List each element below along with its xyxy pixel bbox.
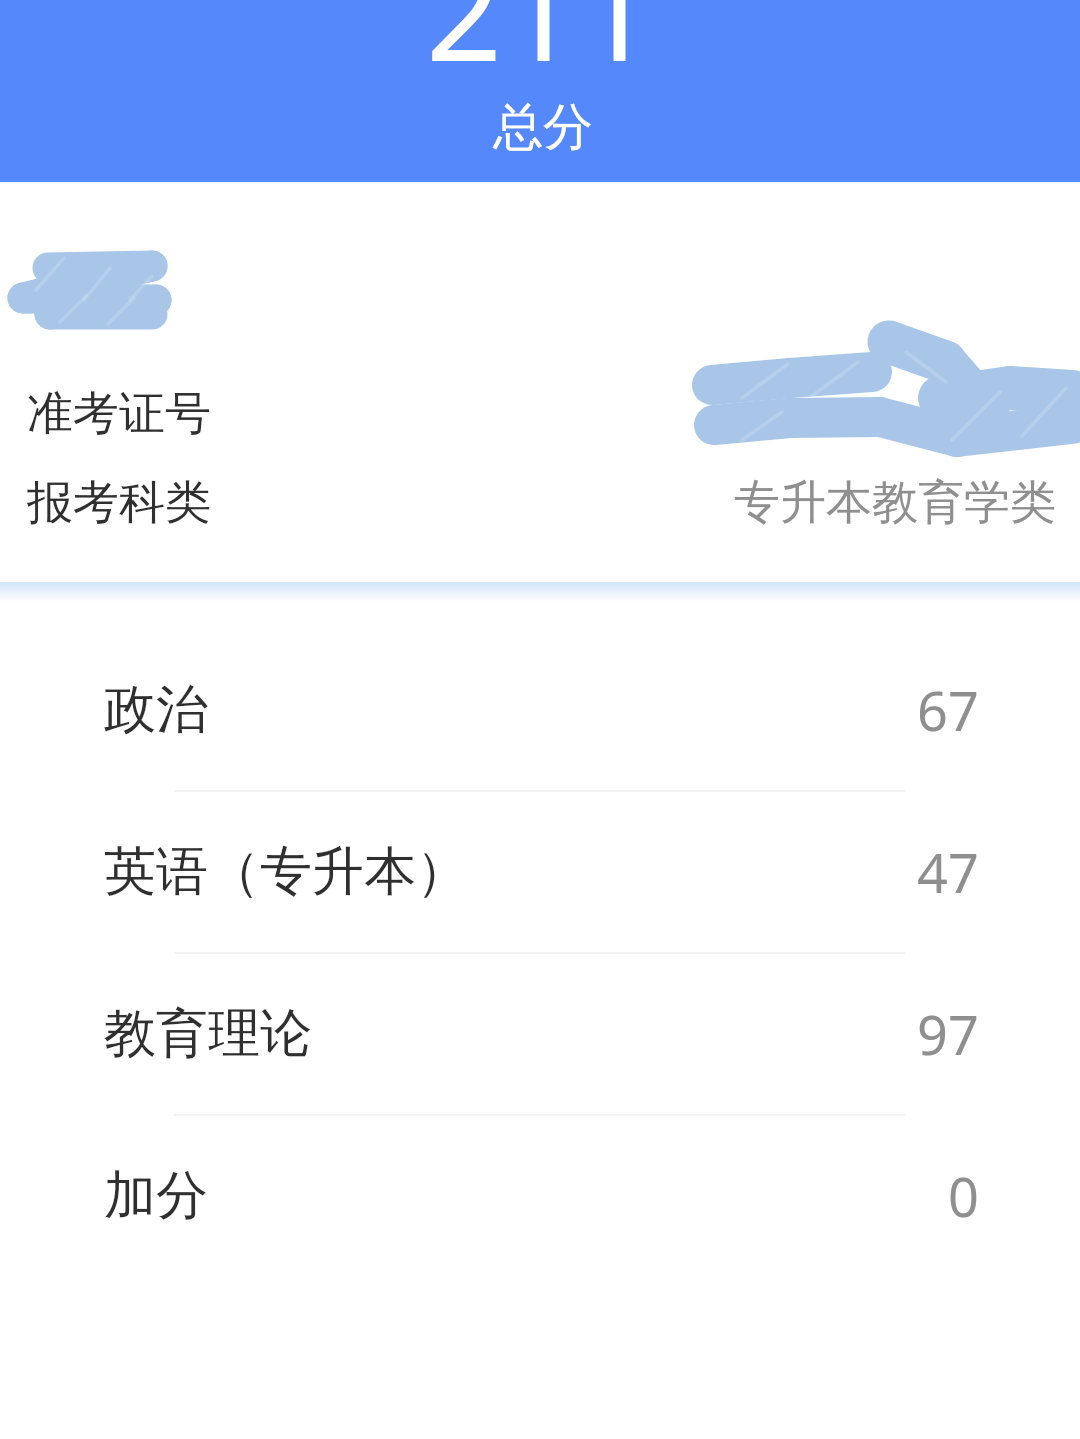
staticText: 报考科类: [27, 474, 211, 532]
staticText: 97: [917, 997, 979, 1071]
staticText: 英语（专升本）: [104, 839, 468, 905]
staticText: 准考证号: [27, 385, 211, 443]
staticText: 专升本教育学类: [0, 474, 1056, 532]
staticText: 政治: [104, 677, 208, 743]
staticText: 67: [917, 673, 979, 747]
staticText: 教育理论: [104, 1001, 312, 1067]
button[interactable]: 英语（专升本）: [0, 792, 1080, 954]
button[interactable]: Total score 211: [0, 0, 1080, 182]
button[interactable]: 加分: [0, 1116, 1080, 1276]
staticText: 加分: [104, 1163, 208, 1229]
staticText: 总分: [3, 96, 1080, 159]
staticText: 47: [917, 835, 979, 909]
button[interactable]: 政治: [0, 630, 1080, 792]
staticText: 211: [0, 0, 1080, 100]
button[interactable]: 教育理论: [0, 954, 1080, 1116]
staticText: 0: [948, 1159, 979, 1233]
